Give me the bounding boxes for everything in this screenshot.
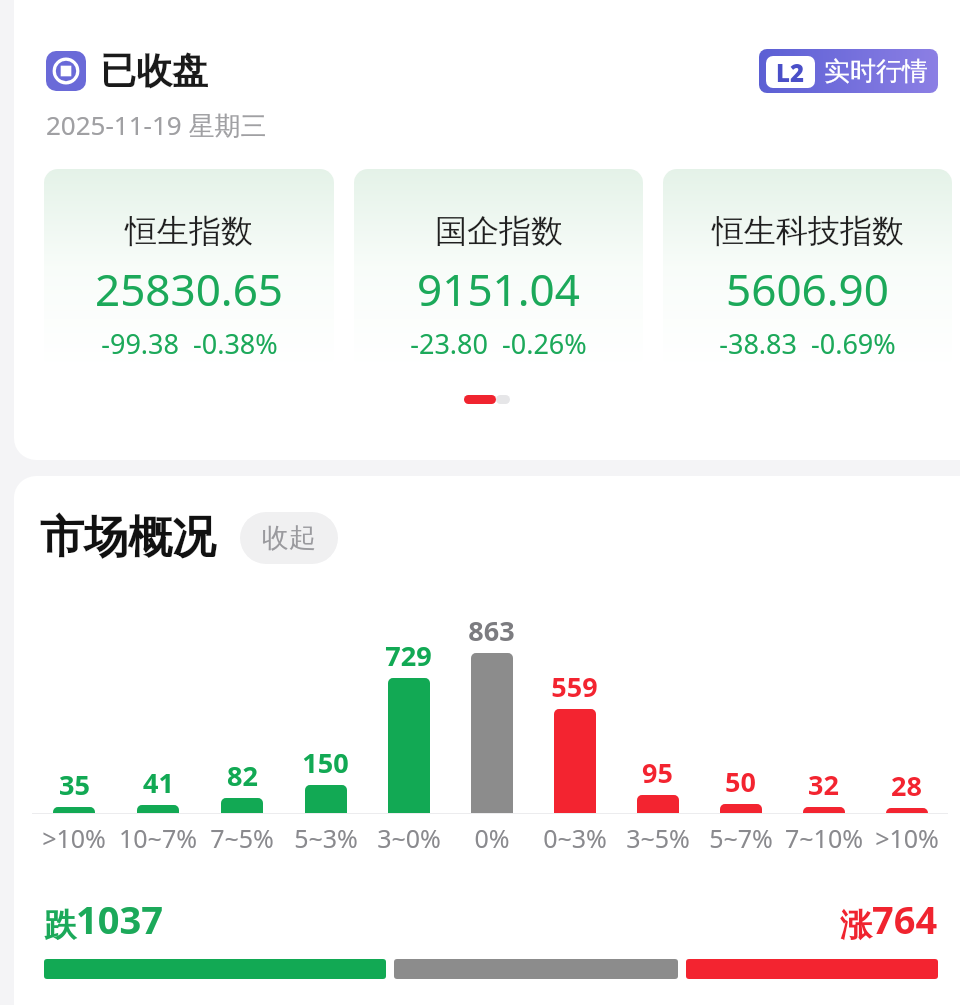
staticText: 市场概况 [40, 510, 216, 565]
staticText: 764 [872, 893, 938, 945]
staticText: 涨 [840, 905, 872, 945]
staticText: 150 [302, 744, 349, 781]
staticText: 3~5% [626, 821, 690, 855]
staticText: 32 [808, 766, 839, 803]
staticText: 收起 [262, 521, 316, 555]
staticText: 1037 [76, 893, 163, 945]
staticText: 9151.04 [417, 259, 580, 319]
staticText: 恒生科技指数 [712, 211, 904, 251]
staticText: 0~3% [543, 821, 607, 855]
button[interactable]: 恒生指数 [44, 169, 334, 369]
staticText: 7~5% [210, 821, 274, 855]
staticText: 7~10% [785, 821, 863, 855]
staticText: 国企指数 [435, 211, 563, 251]
staticText: 已收盘 [100, 48, 208, 93]
staticText: 25830.65 [95, 259, 283, 319]
staticText: 863 [468, 612, 515, 649]
staticText: 恒生指数 [125, 211, 253, 251]
staticText: 5~3% [294, 821, 358, 855]
staticText: 2025-11-19 星期三 [46, 107, 267, 143]
staticText: 0% [474, 821, 510, 855]
button[interactable]: L2 [759, 49, 938, 93]
button[interactable]: 国企指数 [354, 169, 643, 369]
button[interactable]: 恒生科技指数 [663, 169, 952, 369]
staticText: L2 [776, 56, 805, 88]
staticText: 95 [642, 754, 673, 791]
staticText: -38.83 -0.69% [719, 325, 896, 362]
staticText: 82 [227, 757, 258, 794]
staticText: 跌 [44, 905, 76, 945]
staticText: 35 [59, 766, 90, 803]
staticText: 729 [385, 637, 432, 674]
button[interactable]: 收起 [240, 512, 338, 564]
staticText: 5~7% [709, 821, 773, 855]
staticText: 41 [143, 764, 174, 801]
staticText: 50 [725, 763, 756, 800]
staticText: -99.38 -0.38% [101, 325, 278, 362]
staticText: 10~7% [119, 821, 197, 855]
staticText: >10% [42, 821, 106, 855]
staticText: -23.80 -0.26% [410, 325, 587, 362]
button[interactable]: Market closed [46, 51, 86, 91]
staticText: 28 [891, 767, 922, 804]
staticText: 559 [551, 668, 598, 705]
staticText: >10% [875, 821, 939, 855]
staticText: 实时行情 [824, 55, 928, 88]
staticText: 5606.90 [726, 259, 889, 319]
staticText: 3~0% [377, 821, 441, 855]
